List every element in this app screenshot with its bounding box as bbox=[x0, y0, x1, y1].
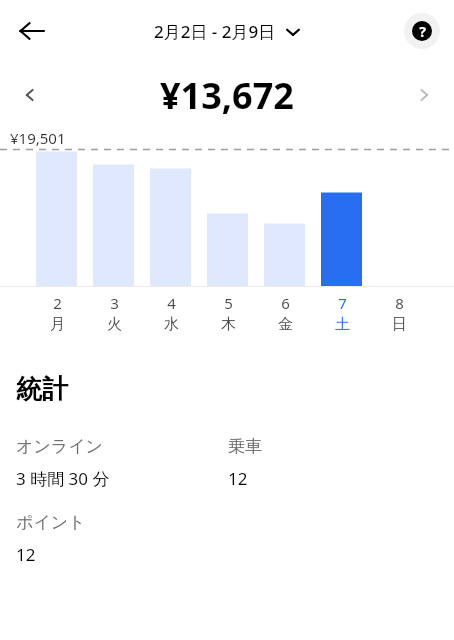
button[interactable]: 2 bbox=[29, 293, 85, 334]
staticText: ¥13,672 bbox=[160, 71, 294, 120]
button[interactable]: 4 bbox=[143, 293, 199, 334]
staticText: 3 時間 30 分 bbox=[16, 467, 110, 490]
button[interactable]: Help bbox=[404, 13, 440, 49]
staticText: 統計 bbox=[16, 373, 68, 406]
staticText: 6 bbox=[281, 293, 290, 313]
staticText: 3 bbox=[110, 293, 119, 313]
staticText: 2月2日 - 2月9日 bbox=[154, 20, 276, 43]
staticText: 2 bbox=[53, 293, 62, 313]
button[interactable]: 7 bbox=[314, 293, 370, 334]
staticText: ¥19,501 bbox=[10, 128, 66, 148]
button[interactable]: 2月2日 - 2月9日 bbox=[148, 16, 306, 47]
button[interactable]: Back bbox=[8, 7, 56, 55]
staticText: 日 bbox=[392, 315, 407, 334]
button[interactable]: 3 bbox=[86, 293, 142, 334]
button[interactable]: Next week bbox=[402, 73, 446, 117]
staticText: 乗車 bbox=[228, 436, 262, 457]
staticText: オンライン bbox=[16, 436, 103, 457]
staticText: ? bbox=[419, 22, 426, 41]
staticText: 金 bbox=[278, 315, 293, 334]
staticText: 土 bbox=[335, 315, 350, 334]
staticText: 5 bbox=[224, 293, 233, 313]
staticText: 12 bbox=[228, 467, 248, 490]
staticText: 月 bbox=[50, 315, 65, 334]
staticText: 水 bbox=[164, 315, 179, 334]
staticText: 12 bbox=[16, 543, 36, 566]
staticText: ポイント bbox=[16, 512, 86, 533]
staticText: 木 bbox=[221, 315, 236, 334]
staticText: 火 bbox=[107, 315, 122, 334]
button[interactable]: 5 bbox=[200, 293, 256, 334]
staticText: 4 bbox=[167, 293, 176, 313]
button[interactable]: Previous week bbox=[8, 73, 52, 117]
staticText: 8 bbox=[395, 293, 404, 313]
button[interactable]: 6 bbox=[257, 293, 313, 334]
button[interactable]: 8 bbox=[371, 293, 427, 334]
staticText: 7 bbox=[338, 293, 347, 313]
